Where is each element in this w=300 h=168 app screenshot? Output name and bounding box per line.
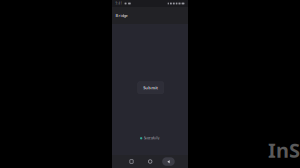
button[interactable]: Home — [144, 155, 157, 168]
staticText: 9:41 — [116, 2, 123, 5]
staticText: InShot — [268, 137, 300, 163]
button[interactable]: Recents — [125, 155, 138, 168]
staticText: Successfully — [144, 136, 159, 140]
button[interactable]: Back — [162, 157, 175, 166]
staticText: Bridge — [116, 13, 128, 18]
button[interactable]: Submit — [138, 82, 164, 94]
staticText: Submit — [143, 85, 158, 90]
